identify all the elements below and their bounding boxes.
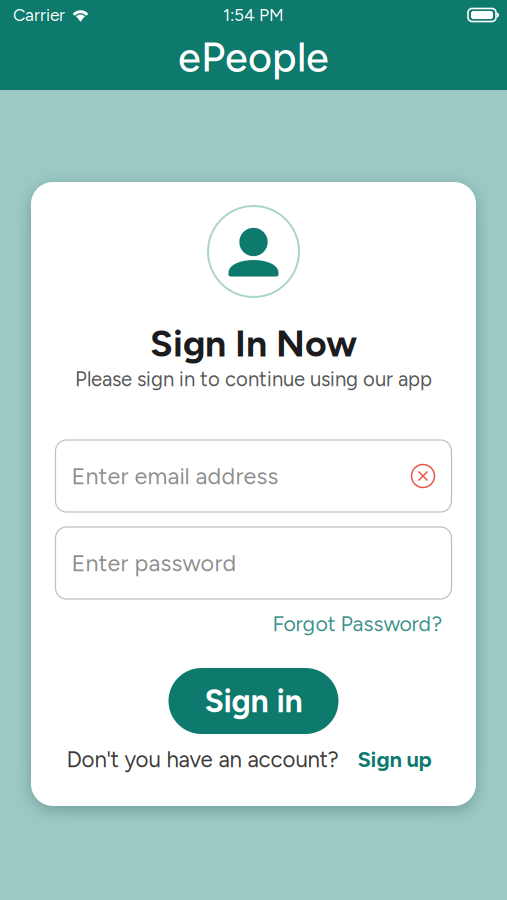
staticText: Carrier [13, 5, 65, 25]
staticText: Enter password [71, 549, 236, 577]
staticText: Sign up [357, 746, 431, 773]
staticText: ePeople [178, 32, 329, 82]
staticText: Sign in [204, 682, 302, 720]
staticText: Forgot Password? [272, 611, 442, 637]
button[interactable]: Sign in [168, 668, 338, 734]
staticText: Please sign in to continue using our app [75, 367, 432, 391]
staticText: Don't you have an account? [66, 746, 338, 773]
button[interactable]: Clear email address [411, 464, 434, 487]
button[interactable]: Forgot Password? [272, 611, 442, 637]
staticText: Sign In Now [150, 321, 357, 366]
button[interactable]: Sign up [338, 746, 431, 773]
staticText: Enter email address [71, 462, 278, 490]
staticText: 1:54 PM [223, 5, 284, 25]
